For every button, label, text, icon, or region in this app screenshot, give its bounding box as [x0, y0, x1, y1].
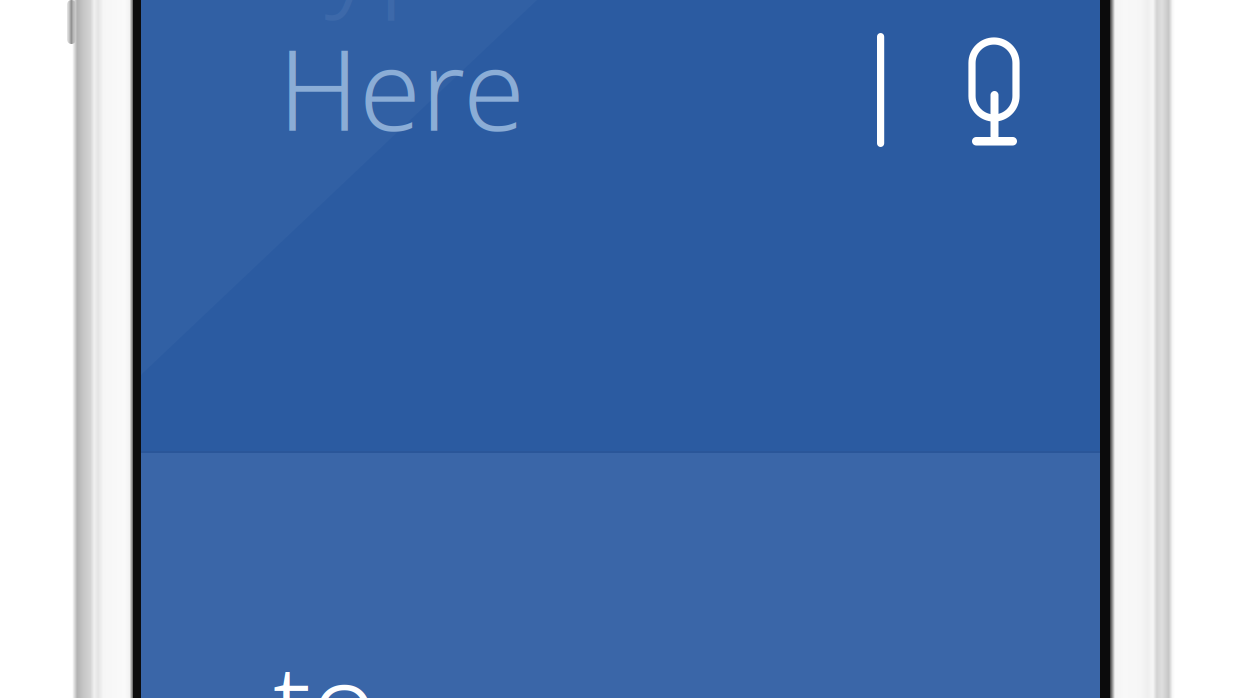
button[interactable]: to [141, 452, 1100, 698]
button[interactable]: Speak [877, 0, 1067, 180]
button[interactable]: Type [141, 0, 841, 452]
staticText: Here [278, 13, 525, 162]
staticText: to [273, 628, 377, 698]
